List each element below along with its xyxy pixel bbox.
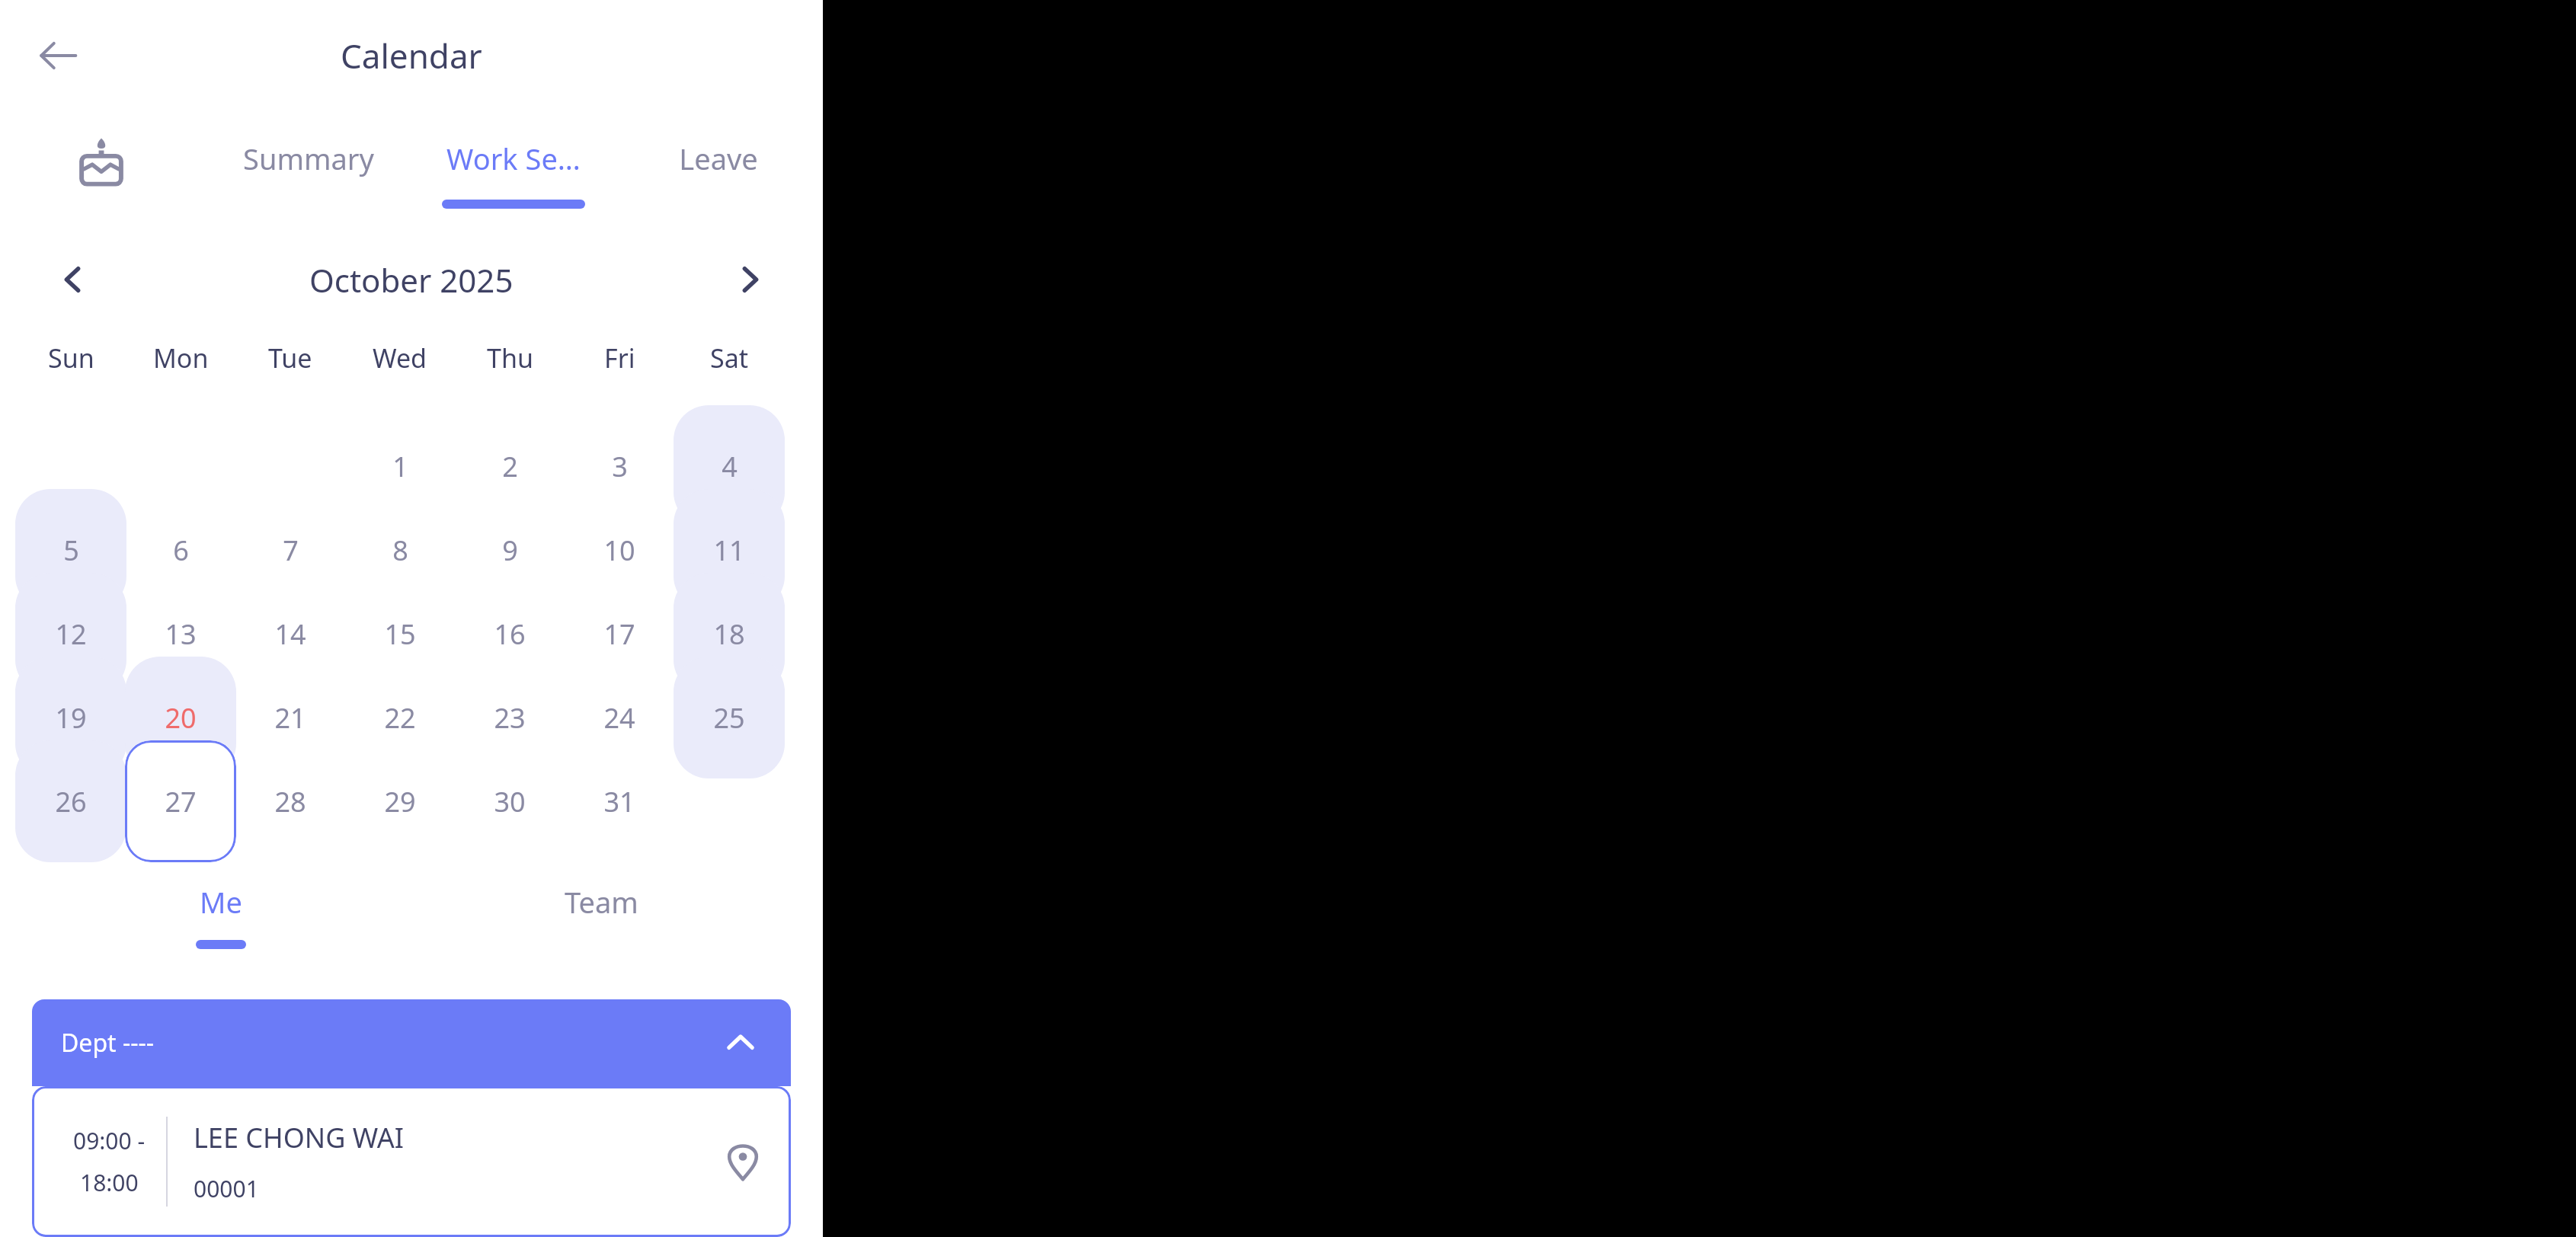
staticText: LEE CHONG WAI bbox=[194, 1119, 404, 1156]
staticText: 29 bbox=[384, 783, 416, 820]
button[interactable]: 13 bbox=[125, 573, 236, 695]
staticText: 6 bbox=[173, 532, 189, 569]
staticText: 2 bbox=[502, 448, 518, 485]
staticText: 13 bbox=[165, 615, 197, 653]
staticText: Fri bbox=[604, 340, 635, 376]
button[interactable]: 31 bbox=[564, 740, 675, 862]
button[interactable]: 21 bbox=[235, 657, 346, 778]
button[interactable]: 22 bbox=[344, 657, 456, 778]
button[interactable]: 23 bbox=[454, 657, 565, 778]
staticText: 21 bbox=[274, 699, 306, 737]
staticText: Sun bbox=[48, 340, 94, 376]
button[interactable]: Next month bbox=[716, 247, 785, 312]
button[interactable]: 26 bbox=[15, 740, 126, 862]
button[interactable]: Team bbox=[494, 882, 708, 966]
staticText: Calendar bbox=[341, 33, 482, 78]
button[interactable]: 18 bbox=[674, 573, 785, 695]
staticText: Me bbox=[200, 882, 242, 922]
staticText: Tue bbox=[268, 340, 312, 376]
staticText: 28 bbox=[274, 783, 306, 820]
staticText: 17 bbox=[603, 615, 635, 653]
button[interactable]: Summary bbox=[225, 128, 392, 221]
staticText: 8 bbox=[392, 532, 408, 569]
staticText: 09:00 - bbox=[73, 1125, 146, 1156]
button[interactable]: 4 bbox=[674, 405, 785, 527]
staticText: 16 bbox=[494, 615, 526, 653]
button[interactable]: 7 bbox=[235, 489, 346, 611]
staticText: 12 bbox=[55, 615, 87, 653]
button[interactable]: 09:00 - bbox=[32, 1086, 791, 1237]
button[interactable]: 14 bbox=[235, 573, 346, 695]
staticText: 26 bbox=[55, 783, 87, 820]
staticText: 31 bbox=[603, 783, 635, 820]
staticText: 3 bbox=[612, 448, 628, 485]
staticText: Team bbox=[565, 882, 638, 922]
button[interactable]: 16 bbox=[454, 573, 565, 695]
button[interactable]: Previous month bbox=[38, 247, 107, 312]
staticText: 19 bbox=[55, 699, 87, 737]
button[interactable]: 15 bbox=[344, 573, 456, 695]
staticText: 00001 bbox=[194, 1173, 259, 1204]
button[interactable]: 1 bbox=[344, 405, 456, 527]
staticText: Work Se… bbox=[446, 139, 581, 178]
staticText: 22 bbox=[384, 699, 416, 737]
staticText: 15 bbox=[384, 615, 416, 653]
staticText: Mon bbox=[153, 340, 209, 376]
button[interactable]: Dept ---- bbox=[32, 999, 791, 1086]
button[interactable]: Leave bbox=[635, 128, 802, 221]
button[interactable]: 3 bbox=[564, 405, 675, 527]
staticText: 20 bbox=[165, 699, 197, 737]
staticText: 5 bbox=[63, 532, 79, 569]
button[interactable]: 29 bbox=[344, 740, 456, 862]
button[interactable]: 24 bbox=[564, 657, 675, 778]
staticText: 24 bbox=[603, 699, 635, 737]
button[interactable]: 17 bbox=[564, 573, 675, 695]
staticText: 25 bbox=[713, 699, 745, 737]
staticText: 18 bbox=[713, 615, 745, 653]
button[interactable]: 28 bbox=[235, 740, 346, 862]
staticText: Thu bbox=[487, 340, 533, 376]
button[interactable]: Work Se… bbox=[430, 128, 597, 221]
staticText: 27 bbox=[165, 783, 197, 820]
button[interactable]: 10 bbox=[564, 489, 675, 611]
staticText: 4 bbox=[722, 448, 738, 485]
button[interactable]: 27 bbox=[125, 740, 236, 862]
button[interactable]: 6 bbox=[125, 489, 236, 611]
button[interactable]: Birthdays bbox=[67, 129, 136, 198]
button[interactable]: 20 bbox=[125, 657, 236, 778]
button[interactable]: Location bbox=[715, 1133, 771, 1190]
button[interactable]: 25 bbox=[674, 657, 785, 778]
staticText: 14 bbox=[274, 615, 306, 653]
button[interactable]: 2 bbox=[454, 405, 565, 527]
staticText: October 2025 bbox=[309, 258, 514, 302]
staticText: Wed bbox=[373, 340, 427, 376]
staticText: 1 bbox=[392, 448, 408, 485]
staticText: Sat bbox=[710, 340, 749, 376]
staticText: Leave bbox=[679, 139, 758, 178]
staticText: 30 bbox=[494, 783, 526, 820]
button[interactable]: 30 bbox=[454, 740, 565, 862]
staticText: 7 bbox=[283, 532, 299, 569]
staticText: Dept ---- bbox=[61, 1026, 155, 1060]
button[interactable]: Back bbox=[24, 22, 91, 89]
button[interactable]: Me bbox=[114, 882, 328, 966]
button[interactable]: 12 bbox=[15, 573, 126, 695]
staticText: 11 bbox=[713, 532, 745, 569]
staticText: 18:00 bbox=[80, 1167, 139, 1198]
staticText: 23 bbox=[494, 699, 526, 737]
staticText: 9 bbox=[502, 532, 518, 569]
staticText: 10 bbox=[603, 532, 635, 569]
staticText: Summary bbox=[243, 139, 374, 178]
button[interactable]: 11 bbox=[674, 489, 785, 611]
button[interactable]: 19 bbox=[15, 657, 126, 778]
button[interactable]: 9 bbox=[454, 489, 565, 611]
other: Collapse bbox=[719, 1021, 762, 1064]
button[interactable]: 8 bbox=[344, 489, 456, 611]
button[interactable]: 5 bbox=[15, 489, 126, 611]
